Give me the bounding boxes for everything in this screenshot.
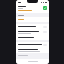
button[interactable]: [16, 29, 49, 35]
button[interactable]: Verified: [16, 4, 49, 13]
button[interactable]: Verified: [43, 6, 47, 10]
button[interactable]: [16, 17, 49, 22]
button[interactable]: [16, 24, 49, 29]
button[interactable]: [16, 42, 49, 47]
button[interactable]: [16, 47, 49, 53]
button[interactable]: [16, 35, 49, 40]
